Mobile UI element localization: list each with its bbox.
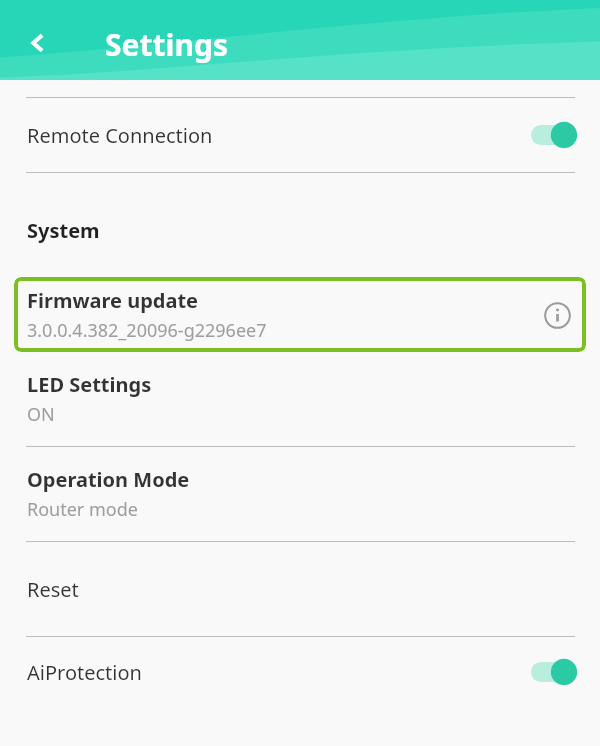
button[interactable]: Back xyxy=(18,22,60,64)
staticText: ON xyxy=(27,402,55,427)
button[interactable]: Firmware update xyxy=(14,277,586,352)
button[interactable]: AiProtection xyxy=(0,637,600,707)
staticText: 3.0.0.4.382_20096-g2296ee7 xyxy=(27,318,267,343)
staticText: Operation Mode xyxy=(27,466,190,493)
staticText: Reset xyxy=(27,576,79,603)
button[interactable]: Information xyxy=(540,298,574,332)
staticText: System xyxy=(27,217,100,244)
staticText: AiProtection xyxy=(27,659,531,686)
staticText: Remote Connection xyxy=(27,122,531,149)
staticText: LED Settings xyxy=(27,371,152,398)
staticText: Firmware update xyxy=(27,287,199,314)
button[interactable]: Reset xyxy=(0,542,600,636)
staticText: Settings xyxy=(105,24,228,65)
button[interactable]: Operation Mode xyxy=(0,447,600,541)
button[interactable]: LED Settings xyxy=(0,352,600,446)
staticText: Router mode xyxy=(27,497,138,522)
button[interactable]: Remote Connection xyxy=(0,98,600,172)
